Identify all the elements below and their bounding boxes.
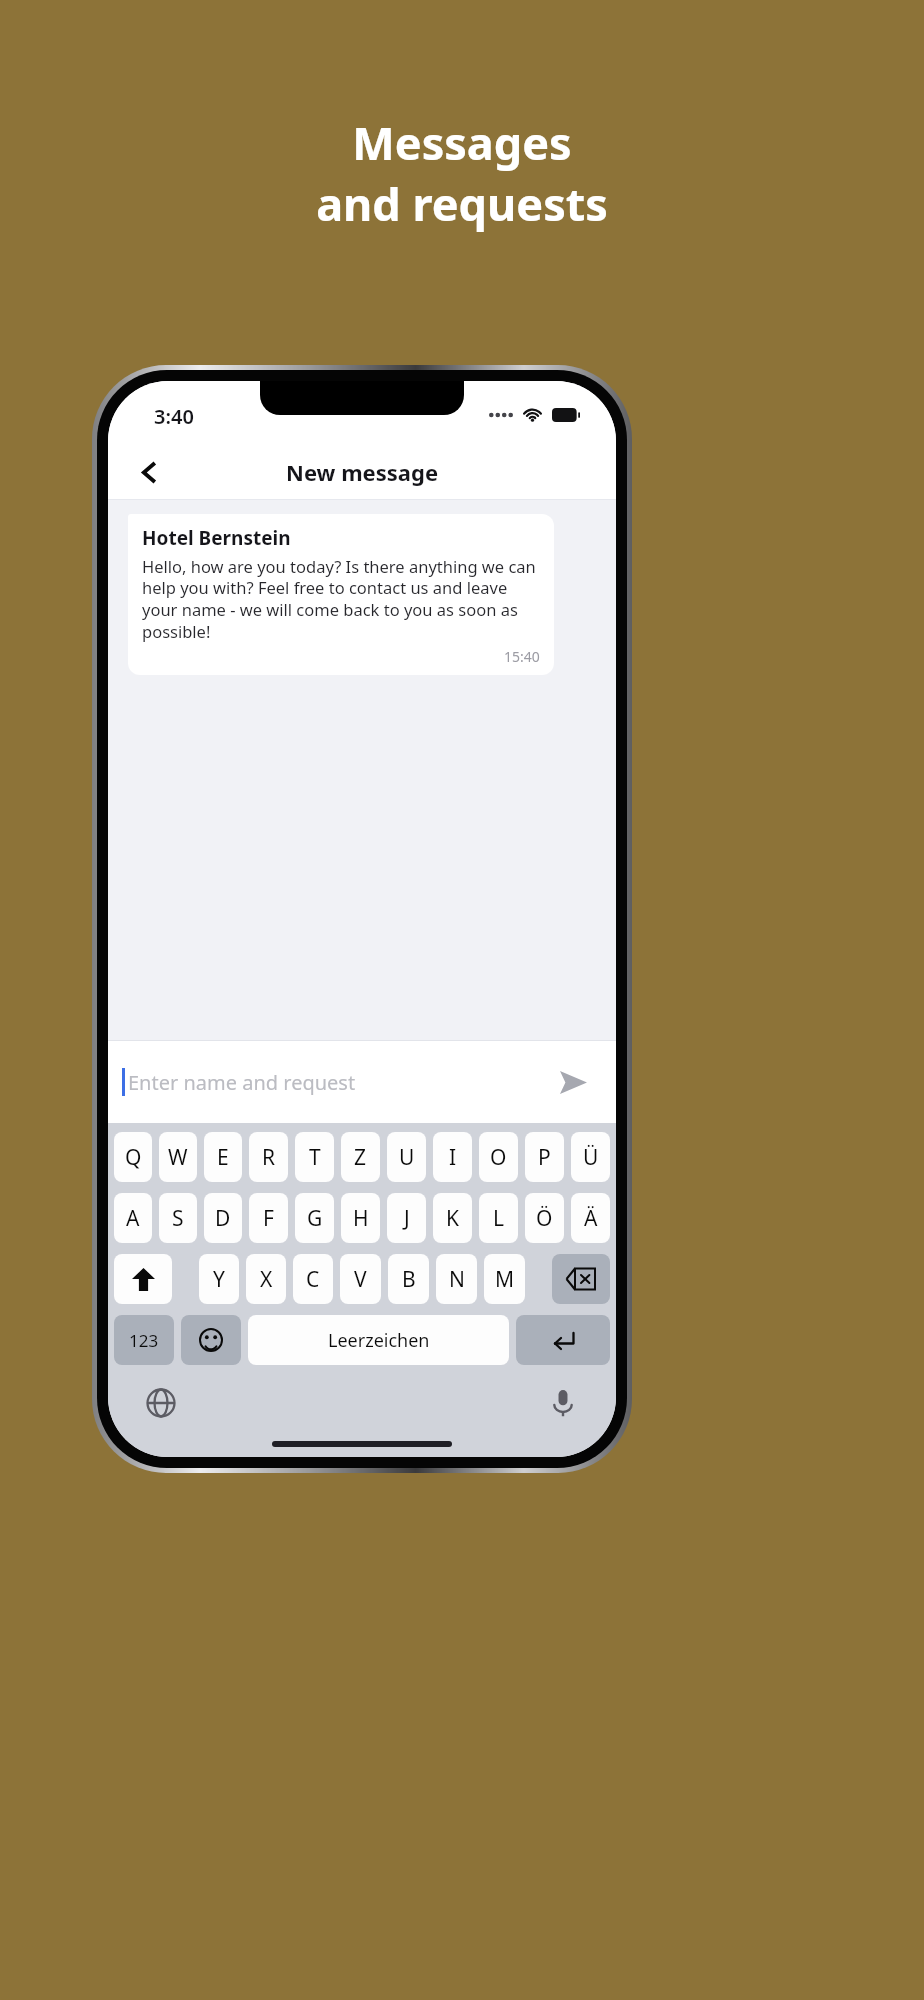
button[interactable]: J (387, 1193, 426, 1243)
button[interactable]: 123 (114, 1315, 174, 1365)
staticText: N (449, 1265, 465, 1294)
staticText: F (263, 1204, 274, 1233)
button[interactable]: Y (199, 1254, 239, 1304)
button[interactable]: W (159, 1132, 197, 1182)
button[interactable]: T (295, 1132, 334, 1182)
staticText: W (168, 1143, 188, 1172)
staticText: Y (213, 1265, 225, 1294)
button[interactable]: F (249, 1193, 288, 1243)
staticText: V (354, 1265, 367, 1294)
button[interactable]: Backspace (552, 1254, 610, 1304)
button[interactable]: A (114, 1193, 152, 1243)
button[interactable]: Emoji (181, 1315, 241, 1365)
staticText: Enter name and request (128, 1069, 356, 1096)
button[interactable]: D (204, 1193, 242, 1243)
button[interactable]: V (340, 1254, 381, 1304)
staticText: H (353, 1204, 369, 1233)
button[interactable]: Ö (525, 1193, 564, 1243)
button[interactable]: B (388, 1254, 429, 1304)
button[interactable]: Change keyboard (138, 1380, 184, 1426)
staticText: Ä (584, 1204, 598, 1233)
staticText: E (217, 1143, 229, 1172)
staticText: U (399, 1143, 415, 1172)
staticText: Hello, how are you today? Is there anyth… (142, 555, 540, 643)
button[interactable]: X (246, 1254, 286, 1304)
staticText: and requests (316, 173, 608, 234)
button[interactable]: Voice input (540, 1380, 586, 1426)
staticText: New message (286, 457, 439, 487)
button[interactable]: Z (341, 1132, 380, 1182)
button[interactable]: Enter name and request (108, 1041, 616, 1123)
button[interactable]: S (159, 1193, 197, 1243)
button[interactable]: E (204, 1132, 242, 1182)
staticText: Z (354, 1143, 367, 1172)
staticText: D (215, 1204, 231, 1233)
button[interactable]: M (484, 1254, 525, 1304)
staticText: Hotel Bernstein (142, 525, 291, 551)
staticText: C (306, 1265, 320, 1294)
staticText: L (493, 1204, 505, 1233)
button[interactable]: Leerzeichen (248, 1315, 509, 1365)
button[interactable]: L (479, 1193, 518, 1243)
button[interactable]: Return (516, 1315, 610, 1365)
staticText: Messages (352, 112, 572, 173)
staticText: I (449, 1143, 457, 1172)
button[interactable]: C (293, 1254, 333, 1304)
staticText: O (490, 1143, 507, 1172)
button[interactable]: Q (114, 1132, 152, 1182)
staticText: 3:40 (154, 403, 194, 430)
button[interactable]: Ü (571, 1132, 610, 1182)
staticText: T (309, 1143, 321, 1172)
staticText: X (260, 1265, 273, 1294)
staticText: B (402, 1265, 416, 1294)
staticText: Ö (536, 1204, 553, 1233)
button[interactable]: K (433, 1193, 472, 1243)
button[interactable]: G (295, 1193, 334, 1243)
button[interactable]: I (433, 1132, 472, 1182)
staticText: P (538, 1143, 551, 1172)
staticText: A (126, 1204, 140, 1233)
button[interactable]: Back (126, 449, 172, 495)
button[interactable]: H (341, 1193, 380, 1243)
staticText: 15:40 (504, 647, 540, 666)
button[interactable]: U (387, 1132, 426, 1182)
button[interactable]: Shift (114, 1254, 172, 1304)
button[interactable]: N (436, 1254, 477, 1304)
button[interactable]: Hotel Bernstein (128, 514, 554, 675)
staticText: S (172, 1204, 184, 1233)
staticText: G (307, 1204, 323, 1233)
staticText: M (495, 1265, 515, 1294)
staticText: Ü (583, 1143, 599, 1172)
button[interactable]: Send (552, 1061, 594, 1103)
staticText: R (262, 1143, 276, 1172)
staticText: K (446, 1204, 459, 1233)
button[interactable]: P (525, 1132, 564, 1182)
staticText: Leerzeichen (328, 1328, 430, 1353)
button[interactable]: R (249, 1132, 288, 1182)
button[interactable]: Ä (571, 1193, 610, 1243)
button[interactable]: O (479, 1132, 518, 1182)
staticText: J (404, 1204, 410, 1233)
staticText: Q (125, 1143, 142, 1172)
staticText: 123 (129, 1329, 159, 1352)
